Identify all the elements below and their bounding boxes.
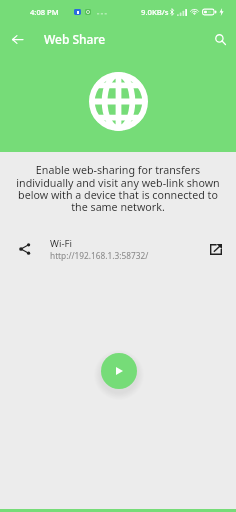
button[interactable]: Search [208,27,233,52]
button[interactable]: Start web share [101,353,137,389]
other: Share [19,243,31,255]
other: Open in browser [210,244,222,255]
staticText: Web Share [44,31,106,47]
button[interactable]: Share [0,234,236,264]
staticText: 9.0KB/s [141,7,169,17]
staticText: http://192.168.1.3:58732/ [50,250,149,261]
staticText: Wi-Fi [50,237,72,250]
staticText: 4:08 PM [30,7,59,17]
staticText: Enable web-sharing for transfers individ… [13,163,223,214]
button[interactable]: Back [5,27,30,52]
